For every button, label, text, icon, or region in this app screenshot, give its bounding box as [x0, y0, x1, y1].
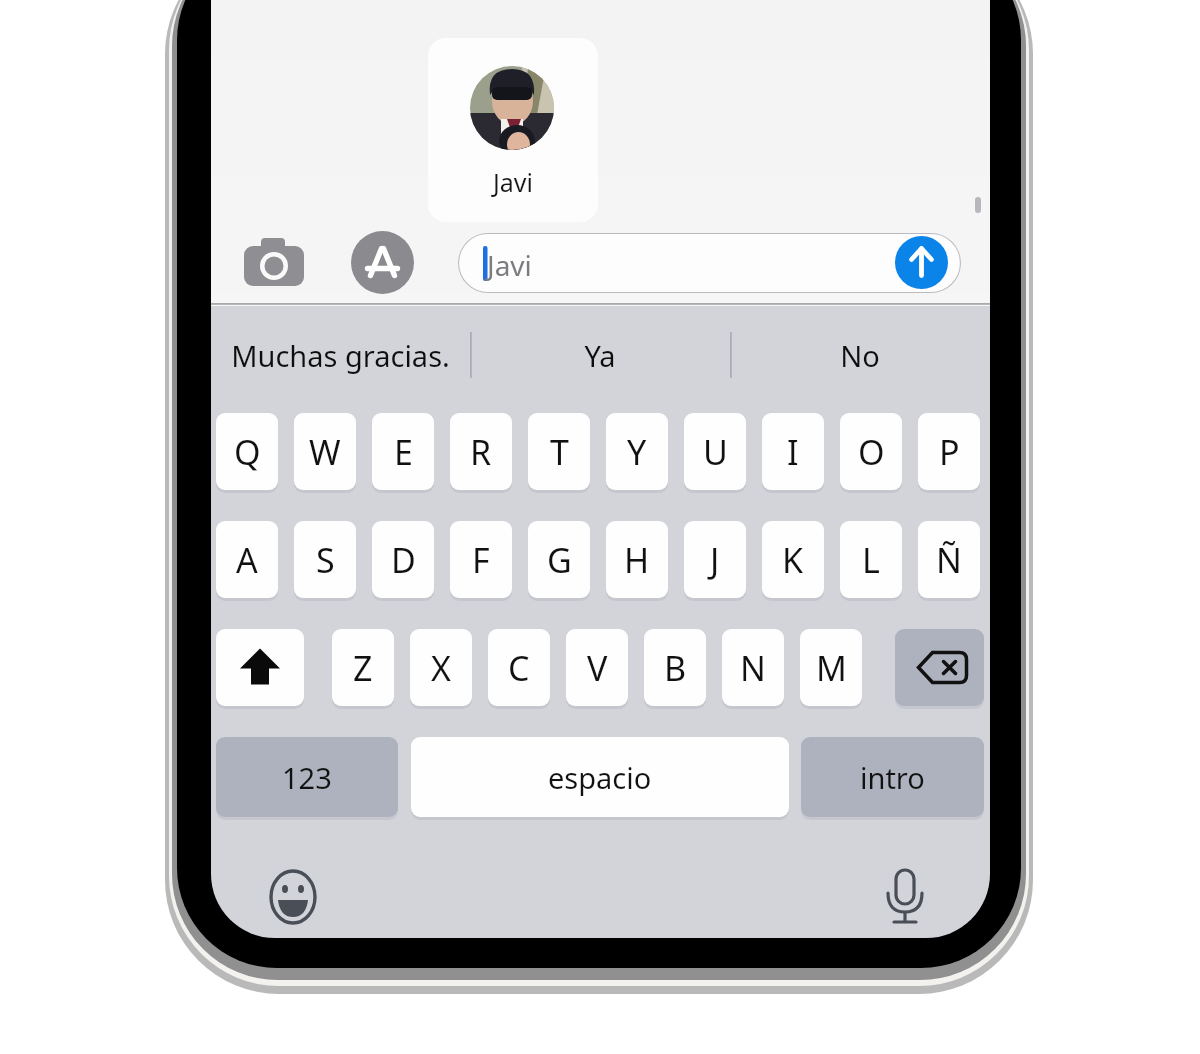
staticText: M	[816, 645, 847, 691]
button[interactable]: App Store apps	[351, 231, 414, 294]
button[interactable]: L	[840, 521, 902, 598]
staticText: Ya	[584, 336, 616, 375]
staticText: D	[391, 537, 416, 583]
staticText: P	[939, 429, 960, 475]
staticText: Javi	[428, 165, 598, 201]
staticText: X	[431, 645, 451, 691]
button[interactable]: N	[722, 629, 784, 706]
staticText: R	[470, 429, 492, 475]
staticText: I	[787, 429, 799, 475]
staticText: C	[508, 645, 530, 691]
button[interactable]: B	[644, 629, 706, 706]
staticText: E	[394, 429, 413, 475]
button[interactable]: M	[800, 629, 862, 706]
button[interactable]: Shift	[216, 629, 304, 706]
button[interactable]: E	[372, 413, 434, 490]
button[interactable]: Q	[216, 413, 278, 490]
staticText: H	[624, 537, 650, 583]
staticText: N	[740, 645, 766, 691]
staticText: T	[550, 429, 569, 475]
button[interactable]: U	[684, 413, 746, 490]
button[interactable]: Backspace	[895, 629, 984, 706]
button[interactable]: Javi	[458, 233, 961, 293]
staticText: U	[703, 429, 728, 475]
staticText: K	[782, 537, 804, 583]
button[interactable]: A	[216, 521, 278, 598]
button[interactable]: G	[528, 521, 590, 598]
button[interactable]: V	[566, 629, 628, 706]
button[interactable]: espacio	[411, 737, 789, 817]
staticText: Z	[353, 645, 373, 691]
button[interactable]: S	[294, 521, 356, 598]
staticText: O	[858, 429, 885, 475]
button[interactable]: Camera	[243, 234, 305, 290]
button[interactable]: W	[294, 413, 356, 490]
staticText: Q	[234, 429, 261, 475]
button[interactable]: F	[450, 521, 512, 598]
staticText: espacio	[548, 758, 652, 797]
staticText: B	[664, 645, 687, 691]
button[interactable]: Dictation	[878, 870, 932, 924]
button[interactable]: No	[730, 310, 990, 400]
button[interactable]: Z	[332, 629, 394, 706]
button[interactable]: R	[450, 413, 512, 490]
button[interactable]: T	[528, 413, 590, 490]
staticText: W	[309, 429, 341, 475]
staticText: Muchas gracias.	[231, 336, 450, 375]
button[interactable]: Ñ	[918, 521, 980, 598]
staticText: G	[547, 537, 572, 583]
button[interactable]: Ya	[470, 310, 730, 400]
button[interactable]: K	[762, 521, 824, 598]
button[interactable]: Javi	[428, 38, 598, 222]
button[interactable]: I	[762, 413, 824, 490]
staticText: Y	[627, 429, 647, 475]
button[interactable]: J	[684, 521, 746, 598]
button[interactable]: Y	[606, 413, 668, 490]
button[interactable]: 123	[216, 737, 398, 817]
button[interactable]: Send	[895, 236, 948, 289]
staticText: Javi	[487, 246, 532, 284]
staticText: Ñ	[936, 537, 962, 583]
staticText: J	[710, 537, 720, 583]
button[interactable]: C	[488, 629, 550, 706]
staticText: F	[472, 537, 490, 583]
button[interactable]: Emoji keyboard	[266, 870, 320, 924]
button[interactable]: intro	[801, 737, 984, 817]
staticText: V	[587, 645, 608, 691]
button[interactable]: P	[918, 413, 980, 490]
staticText: 123	[282, 758, 332, 797]
staticText: S	[316, 537, 335, 583]
staticText: L	[862, 537, 880, 583]
staticText: No	[840, 336, 880, 375]
button[interactable]: O	[840, 413, 902, 490]
button[interactable]: H	[606, 521, 668, 598]
staticText: intro	[860, 758, 925, 797]
button[interactable]: Muchas gracias.	[211, 310, 470, 400]
button[interactable]: D	[372, 521, 434, 598]
button[interactable]: X	[410, 629, 472, 706]
staticText: A	[236, 537, 258, 583]
